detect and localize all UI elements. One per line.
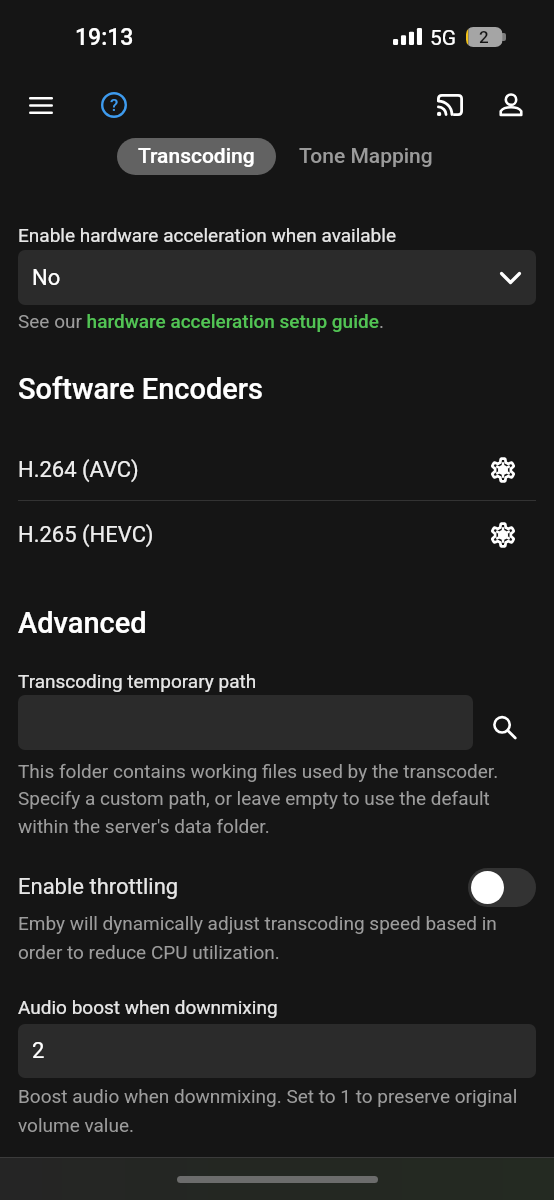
button[interactable]: H.265 (HEVC) <box>18 504 536 565</box>
staticText: Software Encoders <box>18 372 263 406</box>
staticText: 2 <box>32 1038 45 1064</box>
staticText: 5G <box>430 26 457 51</box>
staticText: ? <box>110 95 119 115</box>
staticText: Enable throttling <box>18 874 179 900</box>
staticText: Boost audio when downmixing. Set to 1 to… <box>18 1085 536 1137</box>
button[interactable]: Account <box>488 83 534 129</box>
staticText: Advanced <box>18 606 147 640</box>
staticText: 19:13 <box>75 24 134 51</box>
button[interactable]: Search <box>473 700 536 755</box>
button[interactable]: Tone Mapping <box>276 138 456 175</box>
staticText: Enable hardware acceleration when availa… <box>18 224 396 246</box>
staticText: H.264 (AVC) <box>18 457 139 483</box>
button[interactable]: 2 <box>18 1024 536 1078</box>
staticText: This folder contains working files used … <box>18 760 536 838</box>
button[interactable]: H.264 (AVC) <box>18 439 536 500</box>
button[interactable]: Enable throttling <box>18 863 536 911</box>
staticText: Transcoding <box>138 144 255 169</box>
button[interactable]: Menu <box>18 82 64 128</box>
staticText: Transcoding temporary path <box>18 670 257 692</box>
staticText: Tone Mapping <box>299 144 433 169</box>
staticText: Audio boost when downmixing <box>18 996 278 1018</box>
button[interactable]: Settings for H.264 (AVC) <box>483 450 523 490</box>
button[interactable]: Cast <box>427 82 473 128</box>
button[interactable]: Help <box>91 82 137 128</box>
staticText: Emby will dynamically adjust transcoding… <box>18 912 536 964</box>
staticText: 2 <box>479 27 489 47</box>
staticText: No <box>32 265 61 291</box>
staticText: H.265 (HEVC) <box>18 522 154 548</box>
button[interactable]: Settings for H.265 (HEVC) <box>483 515 523 555</box>
button[interactable]: No <box>18 250 536 305</box>
staticText: See our hardware acceleration setup guid… <box>18 310 384 332</box>
button[interactable]: Transcoding <box>117 138 276 175</box>
